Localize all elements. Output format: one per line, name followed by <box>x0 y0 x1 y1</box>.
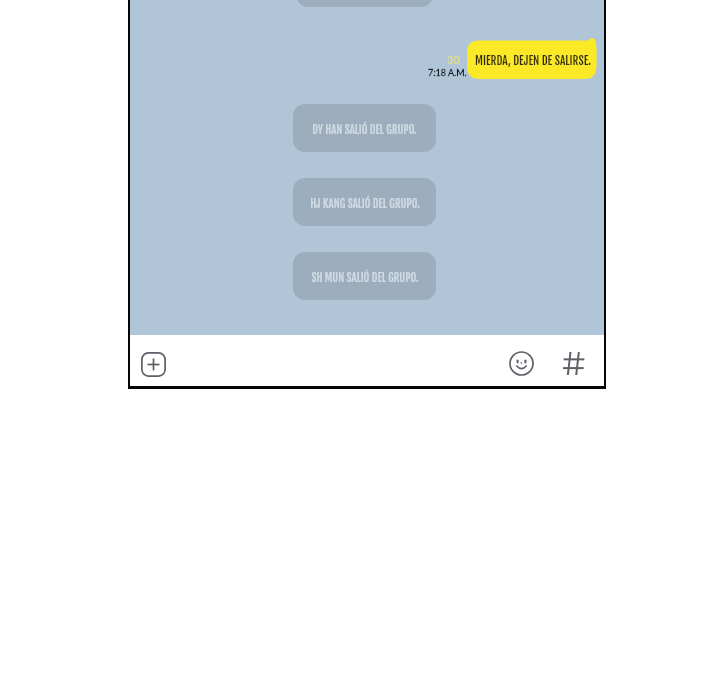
staticText: 7:18 A.M. <box>428 67 467 78</box>
staticText: DY HAN SALIÓ DEL GRUPO. <box>312 123 417 137</box>
staticText: HJ KANG SALIÓ DEL GRUPO. <box>310 197 420 211</box>
button[interactable]: HJ KANG SALIÓ DEL GRUPO. <box>293 178 436 226</box>
button[interactable]: Emoji <box>509 351 534 376</box>
button[interactable]: DY HAN SALIÓ DEL GRUPO. <box>293 104 436 152</box>
staticText: MIERDA, DEJEN DE SALIRSE. <box>475 53 592 67</box>
staticText: 30 <box>447 53 460 66</box>
button[interactable]: SH MUN SALIÓ DEL GRUPO. <box>293 252 436 300</box>
button[interactable]: Add attachment <box>141 352 166 377</box>
button[interactable]: 30 <box>130 0 604 335</box>
button[interactable]: Hashtag <box>563 352 585 375</box>
staticText: SH MUN SALIÓ DEL GRUPO. <box>311 271 419 285</box>
button[interactable]: MIERDA, DEJEN DE SALIRSE. <box>467 38 597 79</box>
